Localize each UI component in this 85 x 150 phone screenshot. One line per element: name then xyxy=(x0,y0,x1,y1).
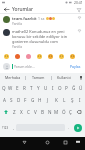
button[interactable]: , xyxy=(10,118,16,137)
button[interactable]: Z xyxy=(11,107,18,117)
button[interactable]: K xyxy=(52,95,60,105)
staticText: Merhaba xyxy=(5,75,21,80)
staticText: L xyxy=(63,97,66,103)
button[interactable]: ?123 xyxy=(1,118,10,137)
staticText: P xyxy=(65,85,68,91)
staticText: Ş xyxy=(71,97,74,103)
button[interactable]: Share xyxy=(75,6,82,13)
staticText: W xyxy=(8,85,13,91)
button[interactable]: Emoji xyxy=(47,53,53,59)
staticText: Tamam xyxy=(32,75,45,80)
button[interactable]: B xyxy=(39,107,46,117)
staticText: I xyxy=(52,85,54,91)
staticText: Yanitla xyxy=(12,22,22,26)
staticText: Y xyxy=(37,85,40,91)
button[interactable]: Like xyxy=(76,29,82,35)
button[interactable]: Voice input xyxy=(78,75,84,81)
staticText: Ü xyxy=(79,85,83,91)
button[interactable]: team.fuarbit xyxy=(0,14,85,26)
button[interactable]: Back xyxy=(2,5,10,13)
button[interactable]: Kullanici xyxy=(52,73,77,82)
staticText: Ö xyxy=(62,109,66,115)
button[interactable]: E xyxy=(14,83,21,93)
staticText: Q xyxy=(2,85,6,91)
staticText: C xyxy=(27,109,30,115)
staticText: ?123 xyxy=(2,126,9,130)
button[interactable]: A xyxy=(1,95,8,105)
button[interactable]: F xyxy=(22,95,29,105)
button[interactable]: P xyxy=(63,83,70,93)
staticText: 1 sa xyxy=(38,16,45,21)
button[interactable]: Emoji xyxy=(58,53,64,59)
staticText: , xyxy=(13,125,14,130)
button[interactable]: T xyxy=(28,83,35,93)
button[interactable]: Send xyxy=(74,124,82,132)
staticText: N xyxy=(48,109,52,115)
button[interactable]: Paylas xyxy=(69,63,82,70)
button[interactable]: Emoji xyxy=(69,53,75,59)
staticText: O xyxy=(58,85,62,91)
button[interactable]: Emoji xyxy=(36,53,42,59)
button[interactable]: Ö xyxy=(60,107,67,117)
button[interactable]: C xyxy=(25,107,32,117)
button[interactable]: Ü xyxy=(77,83,84,93)
staticText: H xyxy=(38,97,42,103)
staticText: K xyxy=(55,97,58,103)
button[interactable]: Recents xyxy=(60,137,70,147)
staticText: Yanitla xyxy=(12,45,22,49)
staticText: Ğ xyxy=(72,85,76,91)
button[interactable]: Emoji xyxy=(14,53,20,59)
staticText: Z xyxy=(13,109,16,115)
button[interactable]: Ç xyxy=(67,107,74,117)
button[interactable]: Tamam xyxy=(26,73,51,82)
button[interactable]: R xyxy=(21,83,28,93)
button[interactable]: I xyxy=(76,95,84,105)
staticText: M xyxy=(54,109,59,115)
button[interactable]: U xyxy=(42,83,49,93)
button[interactable]: N xyxy=(46,107,53,117)
button[interactable]: Q xyxy=(1,83,7,93)
button[interactable]: O xyxy=(56,83,63,93)
button[interactable]: Hide keyboard xyxy=(73,137,83,147)
button[interactable]: D xyxy=(15,95,22,105)
staticText: G xyxy=(31,97,35,103)
button[interactable]: Home xyxy=(42,137,52,147)
button[interactable]: Shift xyxy=(1,107,11,117)
button[interactable]: Back xyxy=(19,137,29,147)
staticText: . xyxy=(68,125,69,130)
staticText: A xyxy=(3,97,6,103)
button[interactable]: G xyxy=(29,95,36,105)
button[interactable]: Merhaba xyxy=(0,73,25,82)
staticText: U xyxy=(44,85,48,91)
staticText: I xyxy=(79,97,81,103)
button[interactable]: Y xyxy=(35,83,42,93)
button[interactable]: V xyxy=(32,107,39,117)
button[interactable]: I xyxy=(49,83,56,93)
button[interactable]: S xyxy=(8,95,15,105)
button[interactable]: Backspace xyxy=(74,107,84,117)
button[interactable]: Emoji xyxy=(25,53,31,59)
button[interactable]: Emoji xyxy=(3,53,9,59)
button[interactable]: J xyxy=(44,95,52,105)
button[interactable]: M xyxy=(53,107,60,117)
staticText: 20:41 xyxy=(74,0,83,5)
staticText: Ç xyxy=(69,109,72,115)
staticText: T xyxy=(30,85,33,91)
staticText: V xyxy=(34,109,37,115)
staticText: Yorum ekle... xyxy=(14,64,67,69)
button[interactable]: W xyxy=(7,83,14,93)
button[interactable]: X xyxy=(18,107,25,117)
button[interactable]: Ş xyxy=(68,95,76,105)
staticText: B xyxy=(41,109,44,115)
button[interactable]: L xyxy=(60,95,68,105)
staticText: J xyxy=(47,97,49,103)
button[interactable]: H xyxy=(36,95,44,105)
staticText: S xyxy=(10,97,13,103)
button[interactable]: mathe02 Konudunuz en yeni konusu bir sek… xyxy=(0,26,85,49)
staticText: Kullanici xyxy=(57,75,72,80)
button[interactable]: Like xyxy=(76,16,82,22)
staticText: D xyxy=(17,97,21,103)
button[interactable]: Ğ xyxy=(70,83,77,93)
